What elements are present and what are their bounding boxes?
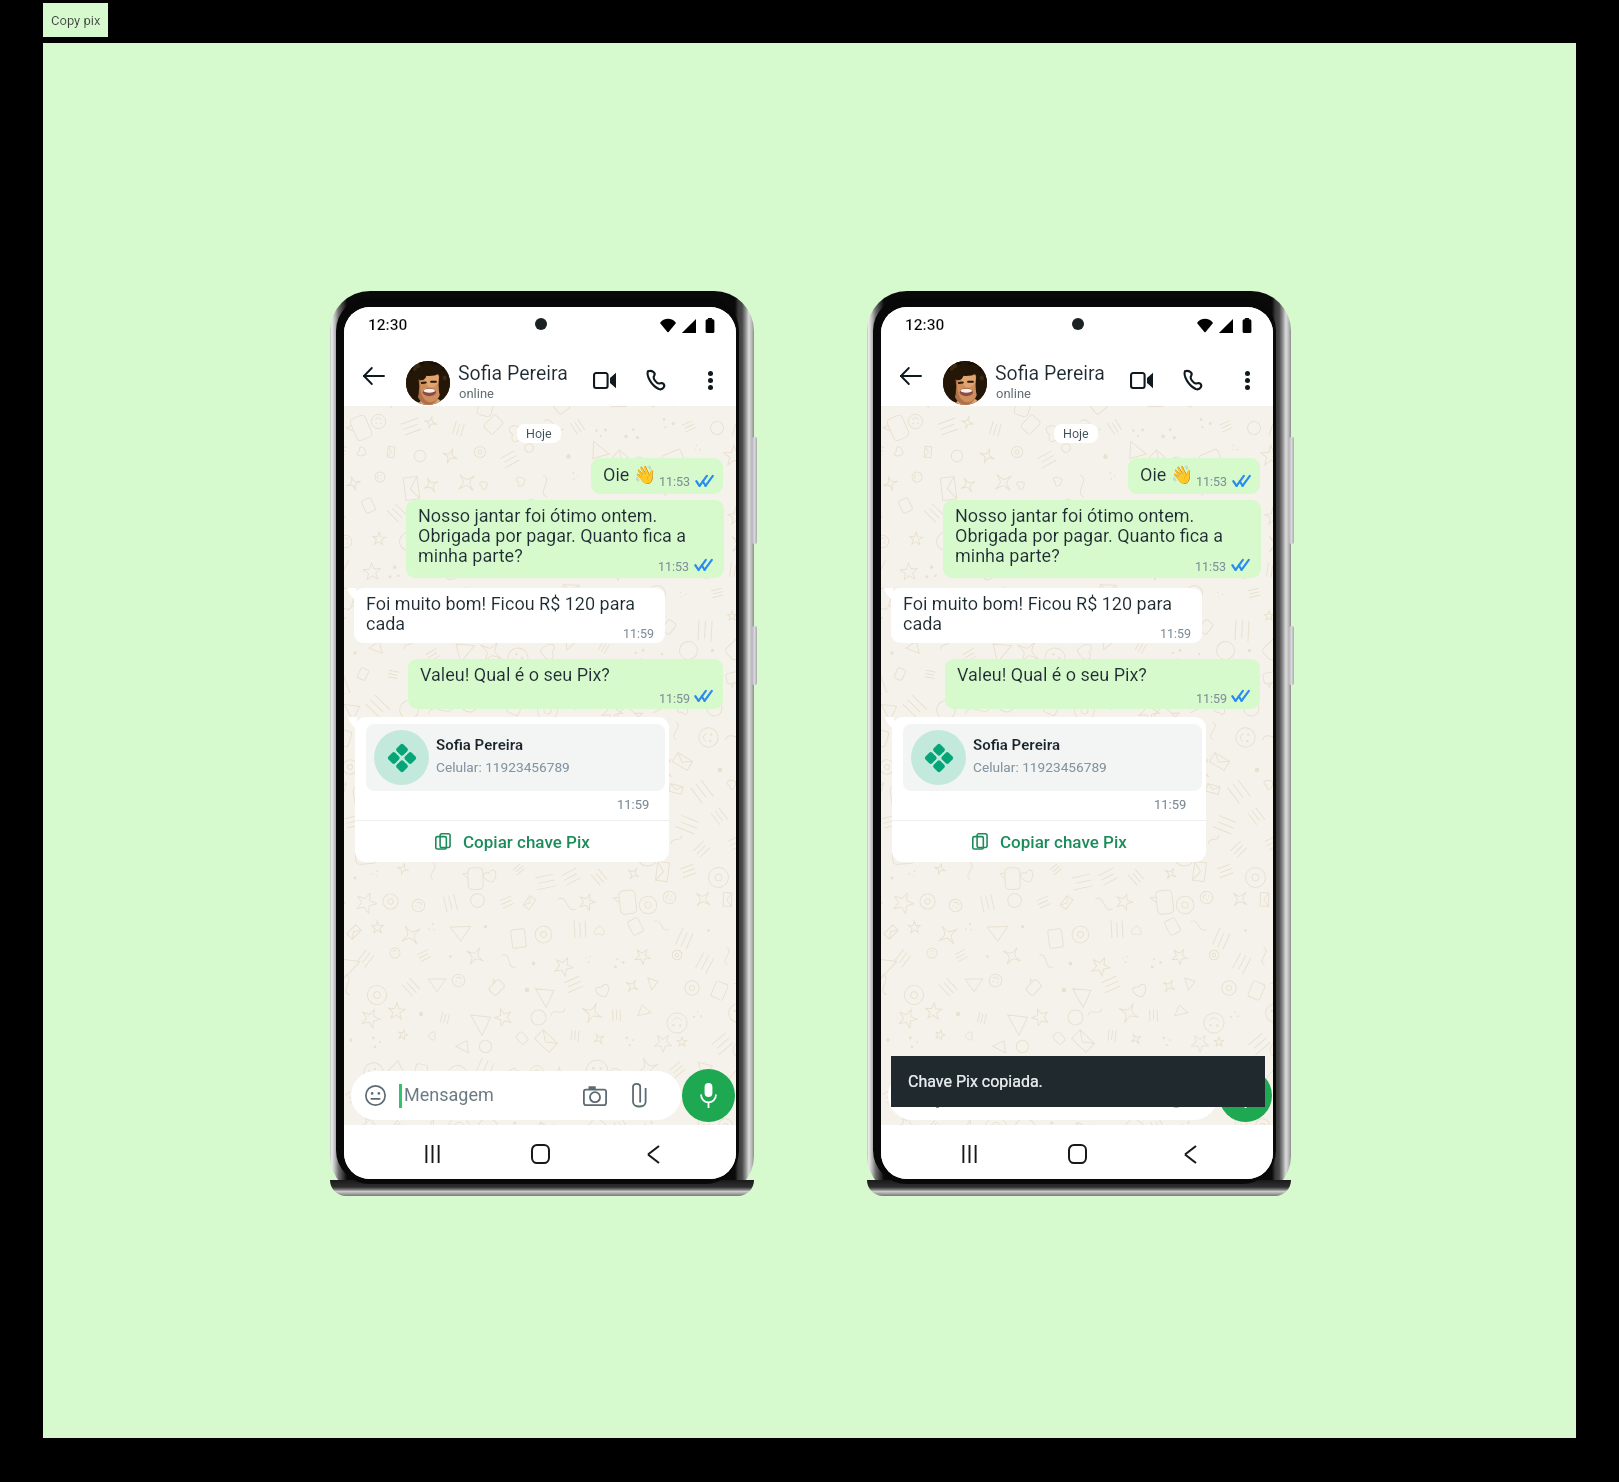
staticText: Oie 👋 xyxy=(1140,464,1194,485)
staticText: Mensagem xyxy=(404,1084,494,1105)
button[interactable]: Voice call xyxy=(1174,361,1212,399)
staticText: 11:59 xyxy=(623,626,655,641)
button[interactable]: Record voice message xyxy=(682,1069,735,1122)
staticText: Copy pix xyxy=(51,13,101,28)
button[interactable]: Video call xyxy=(585,361,623,399)
button[interactable]: Video call xyxy=(1122,361,1160,399)
staticText: 11:53 xyxy=(1196,474,1228,489)
staticText: Nosso jantar foi ótimo ontem. Obrigada p… xyxy=(955,505,1224,567)
button[interactable]: Profile photo xyxy=(943,361,987,405)
button[interactable]: Mensagem xyxy=(351,1071,681,1120)
staticText: 11:53 xyxy=(658,559,690,574)
button[interactable]: Profile photo xyxy=(406,361,450,405)
button[interactable]: Home xyxy=(1059,1136,1095,1172)
button[interactable]: Recent apps xyxy=(951,1136,987,1172)
staticText: 11:59 xyxy=(1160,626,1192,641)
staticText: Celular: 11923456789 xyxy=(973,759,1107,775)
staticText: Foi muito bom! Ficou R$ 120 para cada xyxy=(903,593,1172,635)
button[interactable]: Home xyxy=(522,1136,558,1172)
staticText: Sofia Pereira xyxy=(436,736,523,754)
staticText: Valeu! Qual é o seu Pix? xyxy=(957,664,1147,685)
staticText: Valeu! Qual é o seu Pix? xyxy=(420,664,610,685)
staticText: 11:59 xyxy=(659,691,691,706)
staticText: Chave Pix copiada. xyxy=(908,1072,1043,1091)
staticText: 11:59 xyxy=(617,797,650,812)
staticText: Foi muito bom! Ficou R$ 120 para cada xyxy=(366,593,635,635)
button[interactable]: Voice call xyxy=(637,361,675,399)
staticText: Sofia Pereira xyxy=(995,362,1105,385)
staticText: Sofia Pereira xyxy=(458,362,568,385)
staticText: 12:30 xyxy=(905,316,945,334)
button[interactable]: Record voice message xyxy=(1219,1069,1272,1122)
staticText: Sofia Pereira xyxy=(973,736,1060,754)
button[interactable]: Mensagem xyxy=(888,1071,1218,1120)
staticText: Copiar chave Pix xyxy=(463,832,590,852)
staticText: 11:53 xyxy=(659,474,691,489)
button[interactable]: More options xyxy=(1228,361,1266,399)
staticText: Oie 👋 xyxy=(603,464,657,485)
button[interactable]: Sofia Pereira xyxy=(903,724,1202,791)
staticText: Nosso jantar foi ótimo ontem. Obrigada p… xyxy=(418,505,687,567)
button[interactable]: Copiar chave Pix xyxy=(892,821,1206,862)
staticText: Hoje xyxy=(1063,426,1089,441)
button[interactable]: Back xyxy=(635,1136,671,1172)
button[interactable]: Sofia Pereira xyxy=(989,353,1117,401)
staticText: Hoje xyxy=(526,426,552,441)
staticText: 11:53 xyxy=(1195,559,1227,574)
staticText: online xyxy=(459,386,494,401)
button[interactable]: Recent apps xyxy=(414,1136,450,1172)
button[interactable]: Back xyxy=(894,360,926,392)
button[interactable]: Copiar chave Pix xyxy=(355,821,669,862)
button[interactable]: Sofia Pereira xyxy=(366,724,665,791)
button[interactable]: Back xyxy=(1172,1136,1208,1172)
staticText: 12:30 xyxy=(368,316,408,334)
button[interactable]: Back xyxy=(357,360,389,392)
staticText: Copiar chave Pix xyxy=(1000,832,1127,852)
button[interactable]: More options xyxy=(691,361,729,399)
staticText: online xyxy=(996,386,1031,401)
button[interactable]: Copy pix xyxy=(43,3,108,37)
staticText: 11:59 xyxy=(1154,797,1187,812)
staticText: 11:59 xyxy=(1196,691,1228,706)
staticText: Mensagem xyxy=(941,1084,1031,1105)
button[interactable]: Sofia Pereira xyxy=(452,353,580,401)
staticText: Celular: 11923456789 xyxy=(436,759,570,775)
